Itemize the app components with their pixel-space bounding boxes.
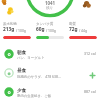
staticText: 炭水化物 bbox=[3, 22, 17, 26]
staticText: 夕食 bbox=[17, 88, 27, 94]
button[interactable]: 夕食 bbox=[0, 82, 100, 100]
staticText: 昼食 bbox=[17, 68, 27, 74]
staticText: 豚肉の生姜焼き、ご飯 bbox=[17, 94, 52, 98]
staticText: 887 cal bbox=[84, 89, 96, 94]
staticText: 213g bbox=[3, 26, 15, 33]
button[interactable]: 昼食 bbox=[0, 63, 100, 82]
staticText: 脂質 bbox=[69, 22, 76, 26]
staticText: 72g bbox=[69, 26, 78, 33]
staticText: 残り bbox=[46, 6, 54, 11]
button[interactable]: 朝食 bbox=[0, 44, 100, 63]
staticText: 1041 bbox=[45, 0, 56, 6]
staticText: タンパク質 bbox=[36, 22, 54, 26]
staticText: 鶏胸肉のサラダ、 478 638... bbox=[17, 74, 61, 79]
staticText: / 100g bbox=[15, 28, 26, 33]
staticText: 312 cal bbox=[84, 51, 96, 56]
staticText: 朝食 bbox=[17, 50, 27, 56]
staticText: パン、ヨーグルト bbox=[17, 56, 45, 60]
staticText: 60g bbox=[36, 26, 45, 33]
staticText: / 100g bbox=[45, 28, 56, 33]
button[interactable]: Add food bbox=[87, 70, 98, 81]
staticText: / 44g bbox=[78, 28, 87, 33]
